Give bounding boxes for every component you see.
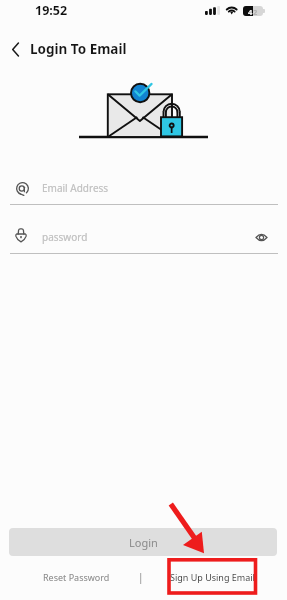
staticText: 4 [248,7,253,16]
staticText: Login To Email [30,40,127,58]
button[interactable]: Email Address [10,172,277,205]
staticText: 2 [253,7,258,16]
staticText: Reset Password [43,571,110,583]
button[interactable]: password [10,222,245,254]
staticText: password [42,230,88,244]
button[interactable]: Show password [248,225,274,249]
button[interactable]: Back [2,34,28,64]
staticText: 19:52 [35,2,68,19]
staticText: Sign Up Using Email [170,571,255,583]
button[interactable]: Sign Up Using Email [167,560,257,593]
staticText: | [138,570,144,584]
staticText: Login [129,535,158,550]
staticText: Email Address [42,181,109,195]
button[interactable]: Login [9,528,277,556]
button[interactable]: Login To Email [30,38,127,60]
button[interactable]: Reset Password [36,566,117,587]
